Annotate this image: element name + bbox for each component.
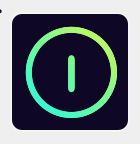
button[interactable]: Standby: [12, 14, 128, 130]
